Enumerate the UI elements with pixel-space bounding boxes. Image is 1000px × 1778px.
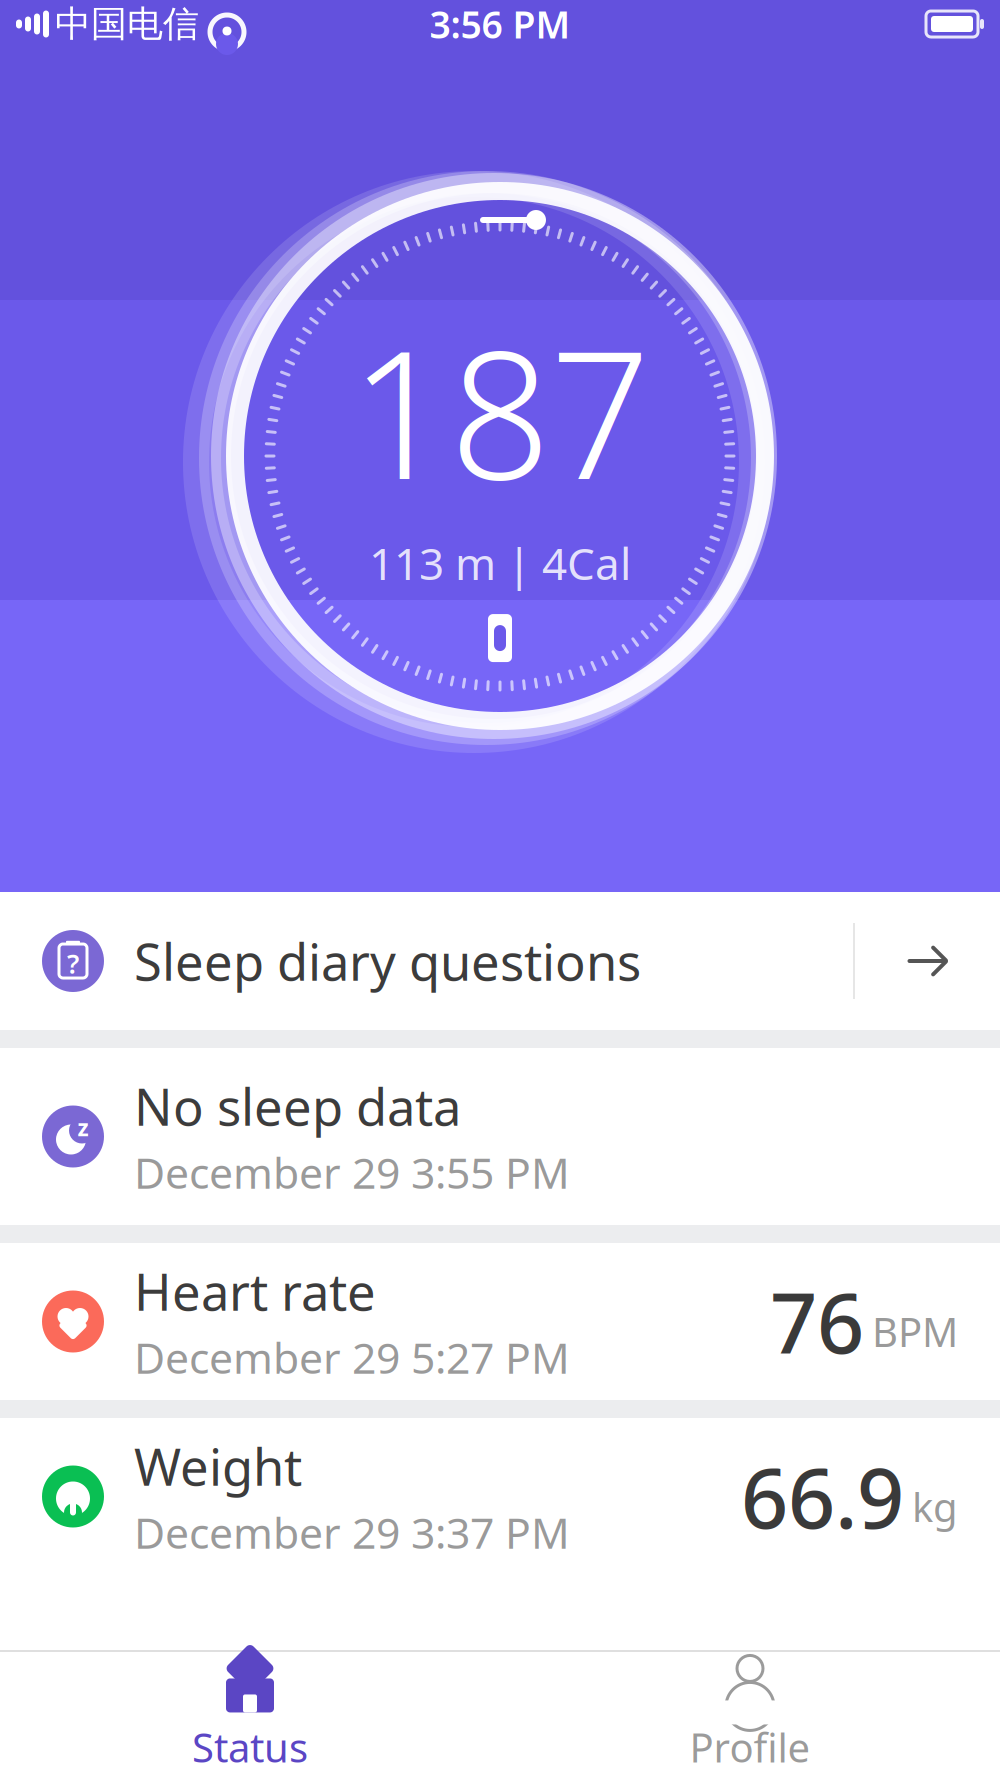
button[interactable]: Status bbox=[0, 1640, 500, 1778]
staticText: Weight bbox=[134, 1432, 302, 1500]
staticText: 76 bbox=[770, 1267, 864, 1376]
staticText: Sleep diary questions bbox=[134, 927, 641, 995]
button[interactable]: ? bbox=[0, 892, 1000, 1030]
button[interactable]: Weight bbox=[0, 1418, 1000, 1575]
staticText: Heart rate bbox=[134, 1257, 376, 1325]
staticText: 3:56 PM bbox=[429, 0, 570, 49]
staticText: December 29 3:55 PM bbox=[134, 1144, 570, 1200]
staticText: ? bbox=[67, 946, 79, 981]
staticText: kg bbox=[912, 1480, 958, 1533]
staticText: 中国电信 bbox=[55, 2, 199, 46]
staticText: 113 m | 4Cal bbox=[369, 534, 631, 592]
staticText: 66.9 bbox=[741, 1442, 904, 1551]
staticText: BPM bbox=[872, 1305, 958, 1358]
staticText: Profile bbox=[689, 1720, 810, 1773]
button[interactable]: Profile bbox=[500, 1640, 1000, 1778]
staticText: December 29 3:37 PM bbox=[134, 1504, 570, 1560]
staticText: December 29 5:27 PM bbox=[134, 1329, 570, 1385]
button[interactable]: Heart rate bbox=[0, 1243, 1000, 1400]
button[interactable]: No sleep data bbox=[0, 1048, 1000, 1225]
staticText: No sleep data bbox=[134, 1072, 461, 1140]
staticText: z bbox=[77, 1112, 88, 1142]
staticText: 187 bbox=[350, 294, 650, 528]
staticText: Status bbox=[192, 1720, 308, 1773]
